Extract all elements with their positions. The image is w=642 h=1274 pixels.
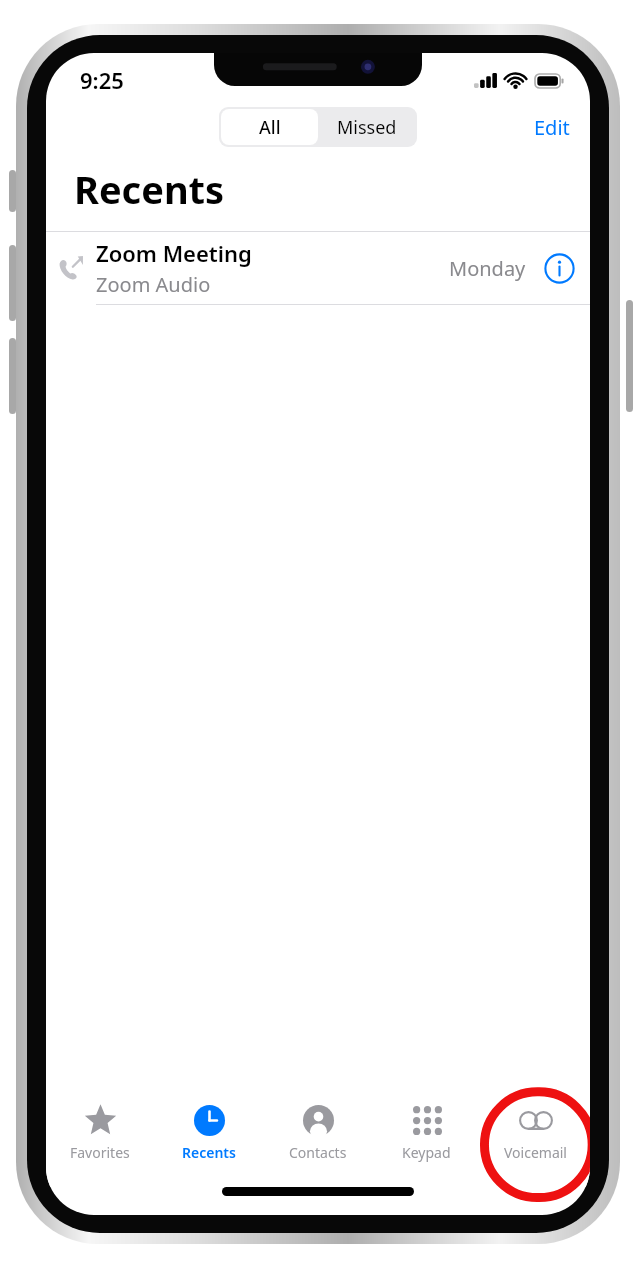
staticText: Monday xyxy=(449,255,526,282)
button[interactable]: Recents xyxy=(154,1089,263,1187)
staticText: All xyxy=(259,115,281,140)
button[interactable]: All xyxy=(221,109,318,145)
button[interactable]: Voicemail xyxy=(481,1089,590,1187)
staticText: Recents xyxy=(182,1143,236,1162)
button[interactable]: Keypad xyxy=(372,1089,481,1187)
staticText: Edit xyxy=(534,114,570,141)
button[interactable]: More info about Zoom Meeting xyxy=(538,247,580,289)
staticText: Contacts xyxy=(289,1143,347,1162)
button[interactable]: Contacts xyxy=(263,1089,372,1187)
staticText: Missed xyxy=(337,115,397,140)
button[interactable]: Zoom Meeting xyxy=(46,232,590,304)
button[interactable]: Edit xyxy=(514,104,590,151)
button[interactable]: Favorites xyxy=(46,1089,154,1187)
button[interactable]: Missed xyxy=(318,109,415,145)
staticText: Favorites xyxy=(70,1143,130,1162)
staticText: Recents xyxy=(74,163,225,215)
staticText: Zoom Audio xyxy=(96,271,211,298)
staticText: Voicemail xyxy=(504,1143,567,1162)
staticText: Zoom Meeting xyxy=(96,238,252,268)
staticText: Keypad xyxy=(402,1143,451,1162)
staticText: 9:25 xyxy=(80,65,124,95)
